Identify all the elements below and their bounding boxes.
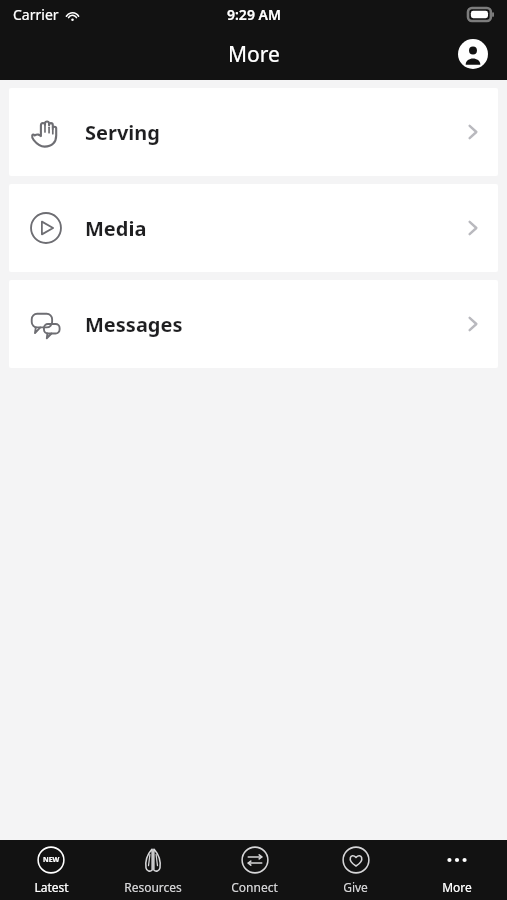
staticText: More [442,879,472,895]
staticText: Serving [85,119,160,146]
button[interactable]: Media [9,184,498,272]
staticText: Give [343,879,368,895]
button[interactable]: Resources [102,840,204,900]
button[interactable]: More [406,840,507,900]
staticText: Connect [231,879,278,895]
staticText: Resources [124,879,182,895]
staticText: Carrier [13,5,59,24]
staticText: Media [85,215,147,242]
staticText: NEW [43,855,60,865]
staticText: Messages [85,311,183,338]
button[interactable]: Give [305,840,406,900]
button[interactable]: Messages [9,280,498,368]
button[interactable]: Profile [453,34,493,74]
button[interactable]: NEW [0,840,102,900]
staticText: More [228,40,280,69]
button[interactable]: Connect [204,840,305,900]
button[interactable]: Serving [9,88,498,176]
staticText: Latest [34,879,69,895]
staticText: 9:29 AM [227,5,281,24]
